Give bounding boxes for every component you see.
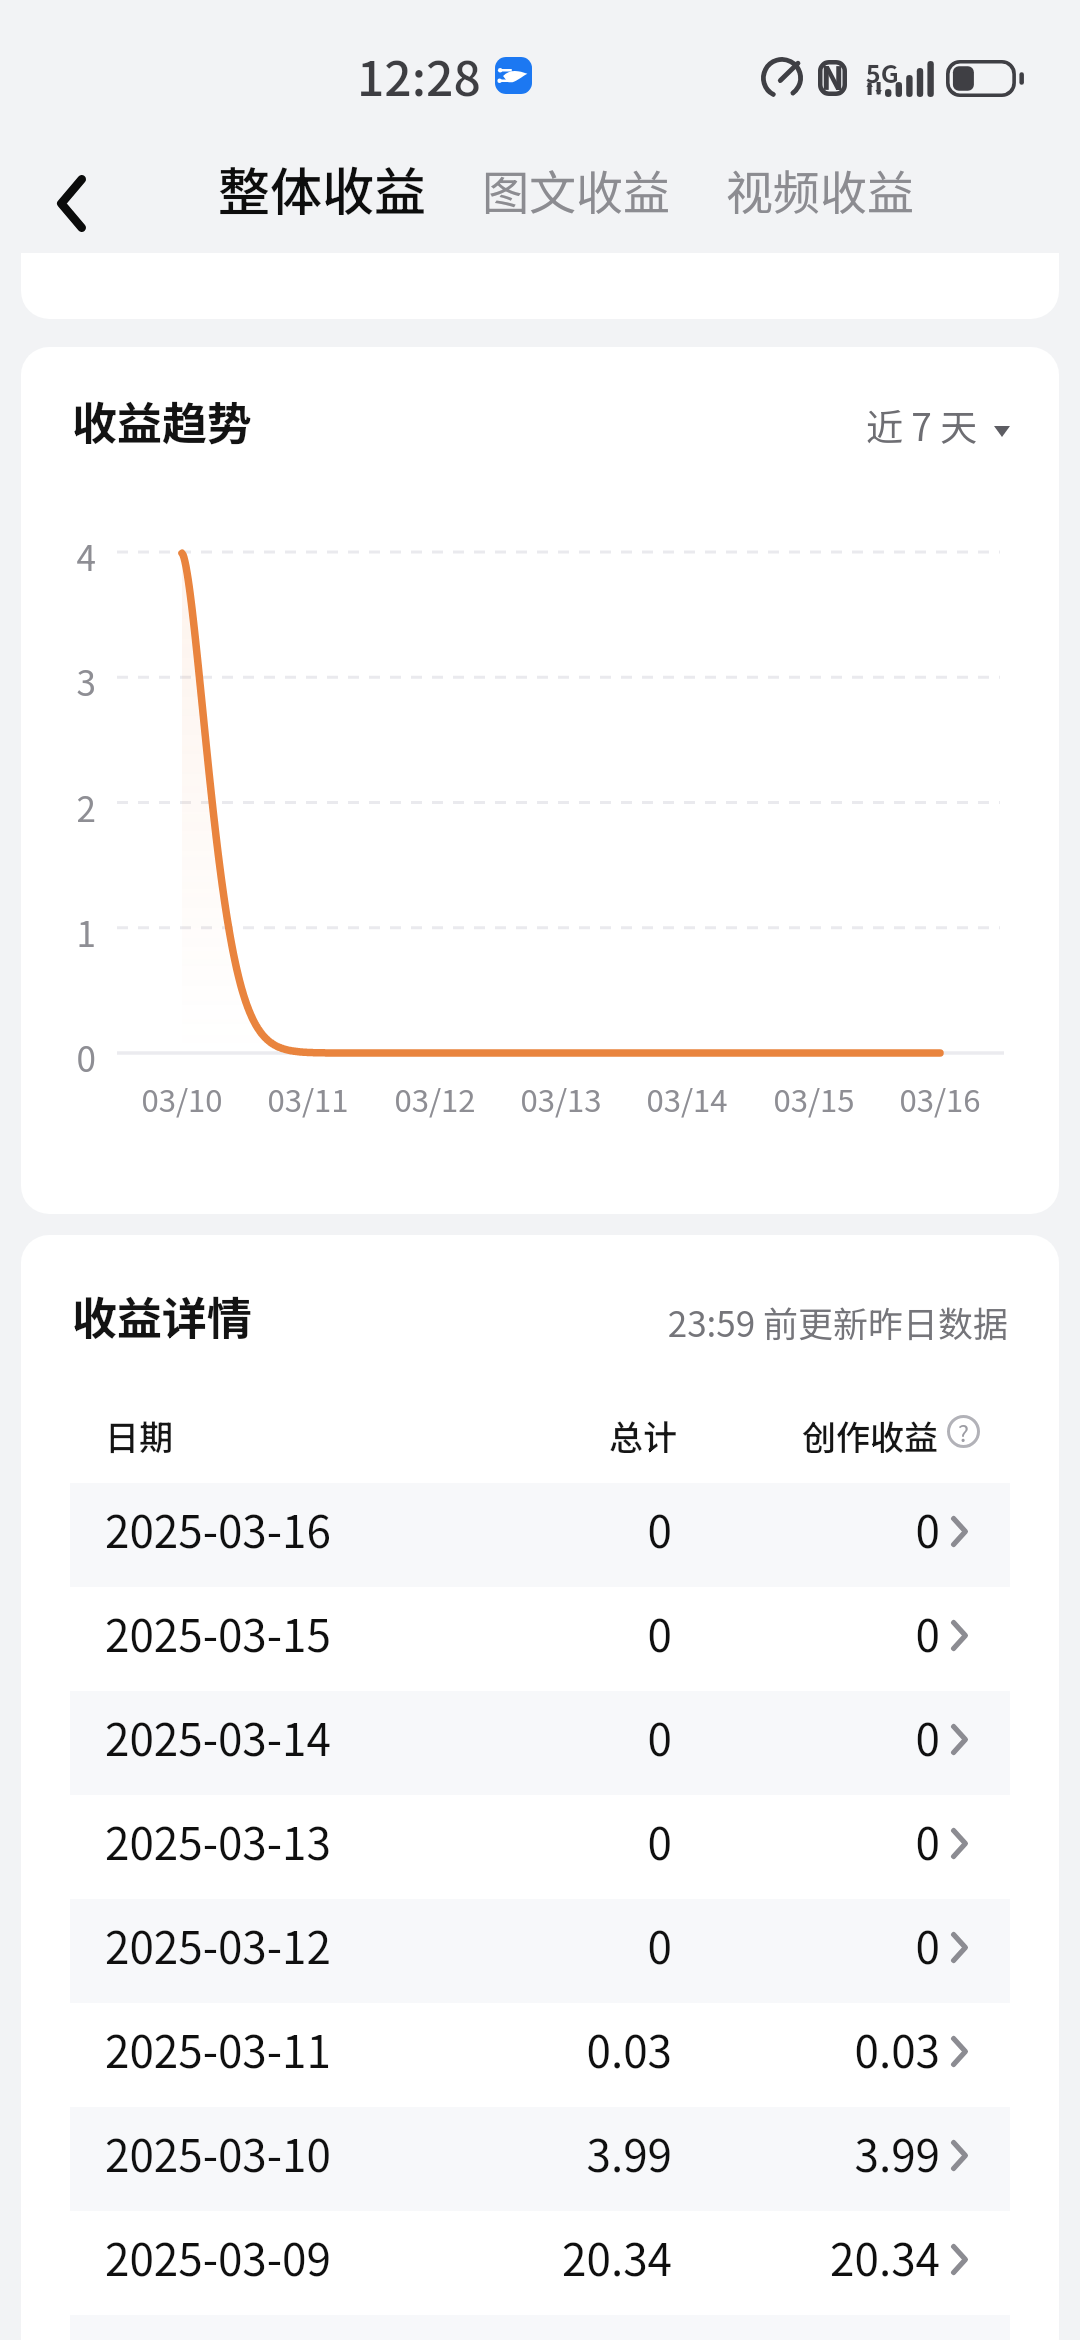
staticText: 0 [680,1601,940,1665]
button[interactable]: Help [944,1412,983,1451]
staticText: 视频收益 [726,155,914,223]
staticText: 03/10 [102,1076,262,1121]
button[interactable]: 2025-03-13 [21,1795,1059,1899]
staticText: 2025-03-16 [105,1497,331,1561]
button[interactable]: 近 7 天 [856,388,1020,462]
staticText: 5G [866,54,899,90]
staticText: 收益详情 [72,1283,253,1348]
button[interactable]: 2025-03-16 [21,1483,1059,1587]
staticText: 创作收益 [802,1411,938,1460]
staticText: 0 [412,1705,672,1769]
staticText: 图文收益 [482,155,670,223]
staticText: 0.03 [680,2017,940,2081]
staticText: 0 [30,1031,96,1082]
staticText: 0 [680,1705,940,1769]
staticText: 03/11 [228,1076,388,1121]
staticText: 2025-03-15 [105,1601,331,1665]
staticText: 整体收益 [218,151,427,226]
staticText: 0 [412,1913,672,1977]
staticText: 2025-03-09 [105,2225,331,2289]
staticText: 2025-03-14 [105,1705,331,1769]
staticText: 收益趋势 [72,388,253,453]
button[interactable]: Back [16,150,126,256]
staticText: 0.03 [412,2017,672,2081]
staticText: 3.99 [412,2121,672,2185]
staticText: 2 [30,781,96,832]
staticText: 2025-03-11 [105,2017,331,2081]
button[interactable]: 图文收益 [472,141,680,237]
staticText: 0 [412,1809,672,1873]
staticText: 3.99 [680,2121,940,2185]
staticText: 03/16 [860,1076,1020,1121]
staticText: 20.34 [680,2225,940,2289]
staticText: 2025-03-13 [105,1809,331,1873]
staticText: 0 [412,1601,672,1665]
staticText: 03/14 [607,1076,767,1121]
button[interactable]: 整体收益 [208,137,437,240]
staticText: 1 [30,906,96,957]
button[interactable]: 2025-03-12 [21,1899,1059,2003]
staticText: 3 [30,655,96,706]
staticText: 总计 [609,1411,677,1460]
staticText: 2025-03-12 [105,1913,331,1977]
staticText: 12:28 [357,40,481,110]
staticText: 4 [30,530,96,581]
button[interactable]: 2025-03-10 [21,2107,1059,2211]
staticText: 2025-03-10 [105,2121,331,2185]
staticText: 日期 [105,1411,173,1460]
staticText: 0 [680,1913,940,1977]
staticText: 0 [680,1497,940,1561]
staticText: 23:59 前更新昨日数据 [600,1296,1008,1347]
button[interactable]: 视频收益 [716,141,924,237]
staticText: 20.34 [412,2225,672,2289]
staticText: ? [958,1415,969,1448]
button[interactable]: 2025-03-11 [21,2003,1059,2107]
staticText: 0 [412,1497,672,1561]
staticText: 03/13 [481,1076,641,1121]
button[interactable]: 2025-03-09 [21,2211,1059,2315]
staticText: 近 7 天 [866,398,978,452]
staticText: 0 [680,1809,940,1873]
staticText: 03/12 [355,1076,515,1121]
staticText: 03/15 [734,1076,894,1121]
button[interactable]: 2025-03-14 [21,1691,1059,1795]
button[interactable]: 2025-03-15 [21,1587,1059,1691]
